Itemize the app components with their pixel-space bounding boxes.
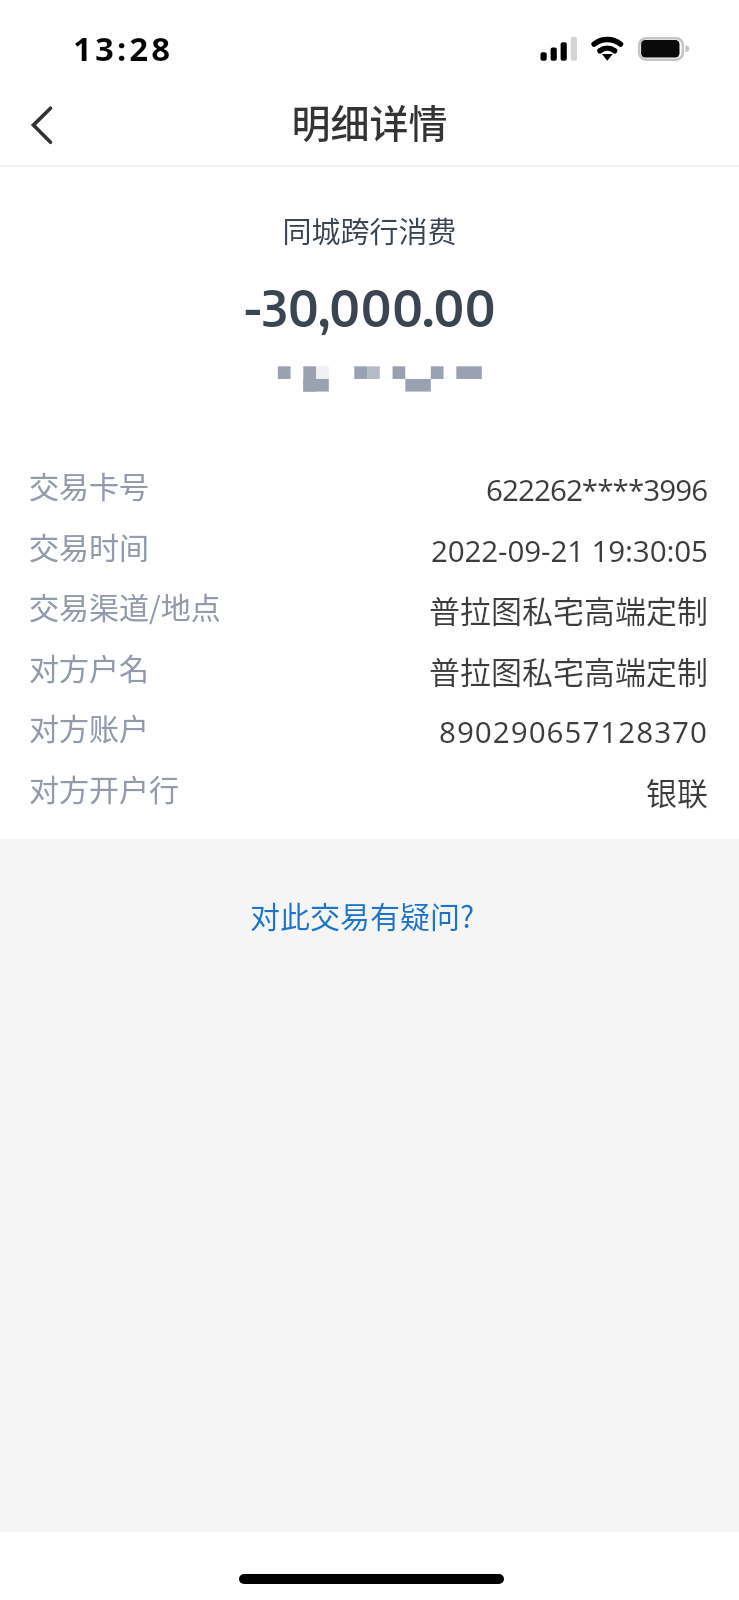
staticText: 13:28 — [73, 26, 174, 71]
staticText: 同城跨行消费 — [0, 209, 739, 251]
staticText: 交易卡号 — [29, 463, 149, 506]
staticText: 交易渠道/地点 — [29, 584, 221, 627]
staticText: 明细详情 — [0, 93, 739, 149]
staticText: 890290657128370 — [439, 711, 708, 751]
button[interactable]: Back — [0, 88, 84, 167]
staticText: 对方开户行 — [29, 766, 179, 809]
staticText: 交易时间 — [29, 524, 149, 567]
staticText: 对此交易有疑问? — [250, 893, 475, 936]
staticText: 对方账户 — [29, 705, 149, 748]
staticText: 普拉图私宅高端定制 — [429, 648, 708, 693]
button[interactable]: 对此交易有疑问? — [220, 883, 505, 946]
staticText: -30,000.00 — [0, 275, 739, 338]
staticText: 622262****3996 — [486, 469, 708, 509]
staticText: 普拉图私宅高端定制 — [429, 587, 708, 632]
staticText: 对方户名 — [29, 645, 149, 688]
staticText: 银联 — [646, 769, 708, 814]
staticText: 2022-09-21 19:30:05 — [431, 530, 708, 570]
